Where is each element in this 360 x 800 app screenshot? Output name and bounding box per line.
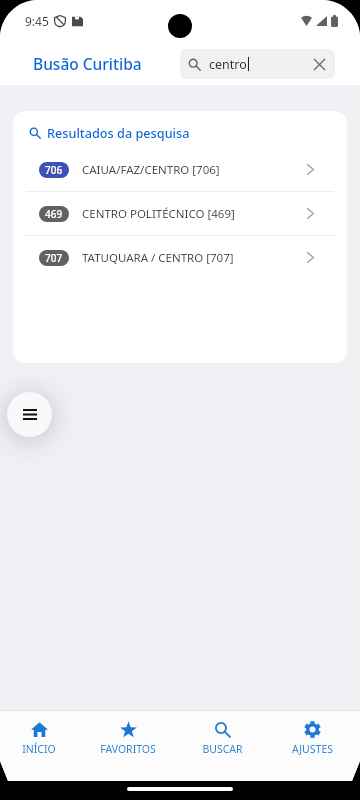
button[interactable]: 707 <box>13 236 347 279</box>
button[interactable]: 706 <box>13 148 347 191</box>
staticText: 469 <box>45 207 63 221</box>
staticText: CAIUA/FAZ/CENTRO [706] <box>82 162 220 178</box>
staticText: INÍCIO <box>22 742 56 756</box>
staticText: Resultados da pesquisa <box>47 124 190 141</box>
staticText: 707 <box>45 251 63 265</box>
staticText: Busão Curitiba <box>33 53 142 74</box>
staticText: AJUSTES <box>292 742 333 756</box>
button[interactable]: INÍCIO <box>0 711 81 760</box>
button[interactable]: AJUSTES <box>270 711 354 760</box>
button[interactable]: BUSCAR <box>180 711 264 760</box>
button[interactable]: FAVORITOS <box>86 711 170 760</box>
staticText: 706 <box>45 163 63 177</box>
staticText: CENTRO POLITÉCNICO [469] <box>82 206 235 222</box>
staticText: TATUQUARA / CENTRO [707] <box>82 250 234 266</box>
staticText: FAVORITOS <box>100 742 156 756</box>
button[interactable]: 469 <box>13 192 347 235</box>
button[interactable]: Clear search <box>310 55 328 73</box>
staticText: centro <box>209 56 247 73</box>
button[interactable]: Open menu <box>7 392 52 437</box>
staticText: BUSCAR <box>202 742 243 756</box>
button[interactable]: centro <box>180 49 335 79</box>
staticText: 9:45 <box>25 13 49 29</box>
